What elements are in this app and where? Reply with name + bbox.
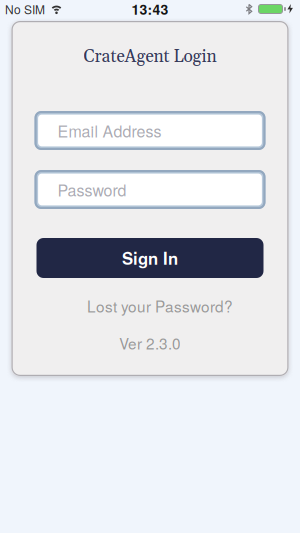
button[interactable]: Password: [34, 170, 265, 209]
staticText: Email Address: [57, 119, 161, 142]
staticText: Password: [57, 178, 126, 201]
staticText: No SIM: [5, 0, 45, 18]
button[interactable]: Lost your Password?: [87, 296, 233, 316]
staticText: 13:43: [131, 0, 168, 19]
staticText: Lost your Password?: [87, 295, 233, 317]
staticText: CrateAgent Login: [83, 46, 216, 68]
staticText: Sign In: [122, 246, 178, 270]
button[interactable]: Email Address: [34, 111, 265, 150]
staticText: Ver 2.3.0: [119, 332, 181, 354]
button[interactable]: Sign In: [36, 238, 263, 278]
